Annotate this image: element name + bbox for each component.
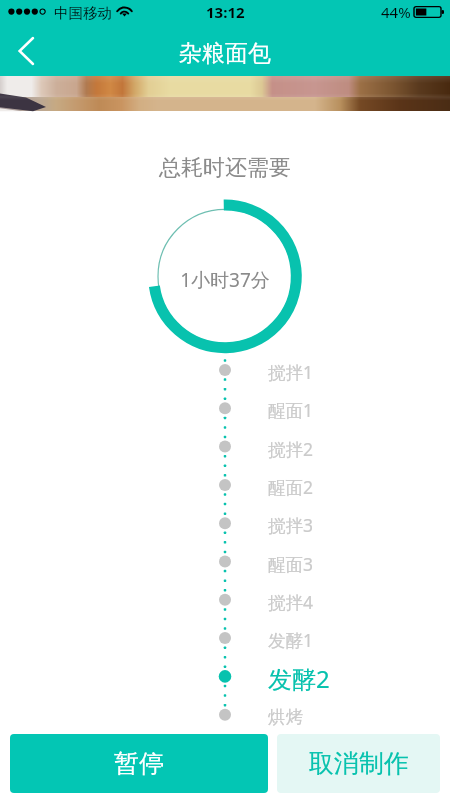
staticText: 取消制作 — [309, 748, 409, 779]
staticText: 搅拌1 — [268, 360, 314, 384]
button[interactable]: Back — [4, 29, 48, 73]
button[interactable]: 醒面2 — [210, 466, 370, 504]
staticText: 总耗时还需要 — [0, 154, 450, 182]
staticText: 搅拌2 — [268, 437, 314, 461]
staticText: 1小时37分 — [0, 267, 450, 293]
staticText: 发酵1 — [268, 628, 314, 652]
button[interactable]: 搅拌3 — [210, 504, 370, 542]
staticText: 搅拌3 — [268, 513, 314, 537]
staticText: 暂停 — [114, 748, 164, 779]
button[interactable]: 发酵2 — [210, 657, 370, 695]
staticText: 醒面3 — [268, 552, 314, 576]
staticText: 醒面1 — [268, 398, 314, 422]
staticText: 醒面2 — [268, 475, 314, 499]
staticText: 13:12 — [206, 2, 245, 22]
button[interactable]: 烘烤 — [210, 696, 370, 734]
staticText: 发酵2 — [268, 662, 330, 695]
button[interactable]: 发酵1 — [210, 619, 370, 657]
staticText: 44% — [381, 2, 411, 22]
button[interactable]: 搅拌2 — [210, 428, 370, 466]
staticText: 杂粮面包 — [179, 39, 271, 68]
staticText: 搅拌4 — [268, 590, 314, 614]
button[interactable]: 搅拌4 — [210, 581, 370, 619]
staticText: 中国移动 — [54, 4, 112, 22]
button[interactable]: 取消制作 — [277, 734, 440, 793]
staticText: 烘烤 — [268, 706, 303, 728]
button[interactable]: 醒面1 — [210, 389, 370, 427]
button[interactable]: 搅拌1 — [210, 351, 370, 389]
button[interactable]: 暂停 — [10, 734, 268, 793]
button[interactable]: 醒面3 — [210, 543, 370, 581]
